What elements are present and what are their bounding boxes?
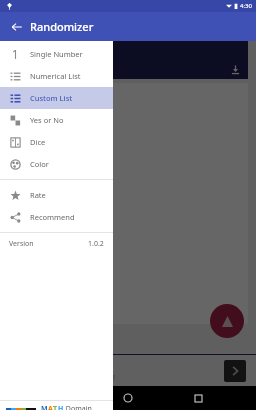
button[interactable]: Single Number <box>0 43 113 65</box>
button[interactable]: Open ad <box>224 360 246 382</box>
button[interactable]: Recents <box>186 386 210 410</box>
staticText: T <box>53 404 58 410</box>
staticText: A <box>48 404 53 410</box>
button[interactable]: Math Domain Development <box>6 401 107 410</box>
button[interactable] <box>0 0 256 386</box>
staticText: Single Number <box>30 49 83 59</box>
staticText: Version <box>9 239 34 249</box>
staticText: Randomizer <box>30 19 94 34</box>
staticText: Custom List <box>16 46 66 58</box>
button[interactable]: Rate <box>0 184 113 206</box>
staticText: Rate <box>30 190 46 200</box>
button[interactable]: Randomize <box>210 304 244 338</box>
staticText: Color <box>30 159 49 169</box>
staticText: 1.0.2 <box>88 239 104 249</box>
button[interactable]: Numerical List <box>0 65 113 87</box>
staticText: 4:30 <box>240 2 252 10</box>
staticText: H <box>58 404 64 410</box>
staticText: Test ad from AdMob. Way to go! <box>10 373 115 383</box>
staticText: Domain <box>64 404 92 410</box>
staticText: M <box>41 404 48 410</box>
staticText: Numerical List <box>30 71 81 81</box>
button[interactable]: Recommend <box>0 206 113 228</box>
button[interactable]: Custom List <box>0 87 113 109</box>
staticText: Dice <box>30 137 46 147</box>
staticText: Yes or No <box>30 115 64 125</box>
button[interactable]: Yes or No <box>0 109 113 131</box>
button[interactable]: Home <box>116 386 140 410</box>
staticText: Recommend <box>30 212 75 222</box>
button[interactable]: Color <box>0 153 113 175</box>
staticText: Custom List <box>30 93 73 103</box>
button[interactable]: Dice <box>0 131 113 153</box>
button[interactable]: Back <box>6 16 28 38</box>
button[interactable]: Back <box>46 386 70 410</box>
